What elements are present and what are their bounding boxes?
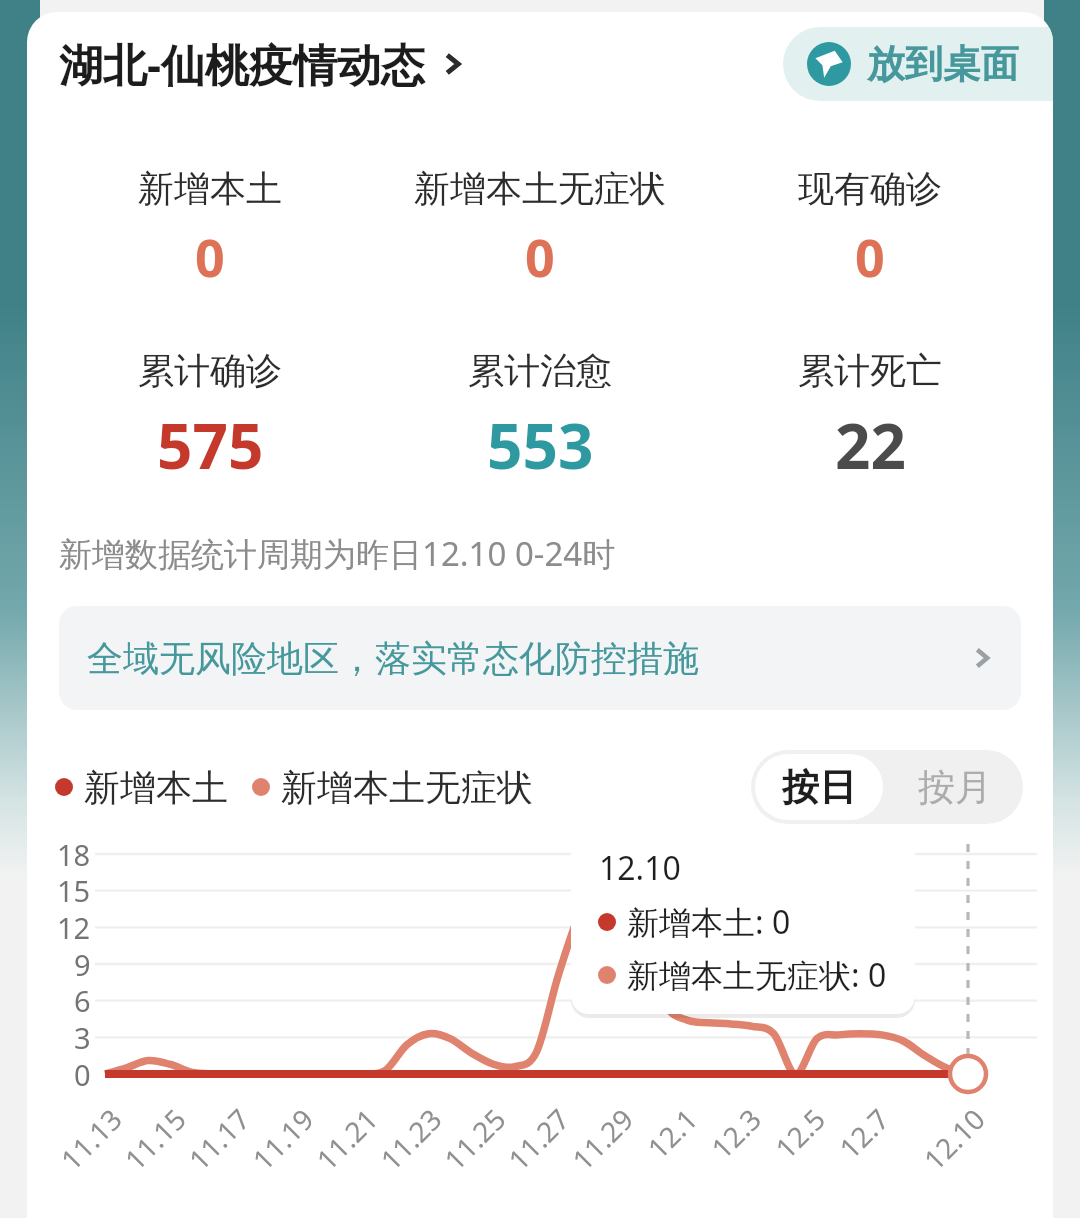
staticText: 22 (835, 403, 906, 487)
staticText: 0 (195, 221, 225, 292)
staticText: 按日 (782, 764, 856, 811)
staticText: 现有确诊 (798, 166, 942, 211)
staticText: 新增本土无症状 (414, 166, 666, 211)
button[interactable]: 湖北-仙桃疫情动态 (27, 12, 482, 116)
staticText: 累计死亡 (798, 348, 942, 393)
button[interactable]: Add to home screen (783, 27, 1053, 101)
button[interactable]: 全域无风险地区，落实常态化防控措施 (59, 606, 1021, 710)
staticText: 0 (525, 221, 555, 292)
staticText: 575 (157, 403, 264, 487)
button[interactable]: 按日 (755, 754, 883, 820)
staticText: 累计确诊 (138, 348, 282, 393)
staticText: 累计治愈 (468, 348, 612, 393)
staticText: 553 (487, 403, 594, 487)
staticText: 湖北-仙桃疫情动态 (59, 34, 426, 94)
staticText: 新增数据统计周期为昨日12.10 0-24时 (59, 531, 616, 576)
staticText: 放到桌面 (867, 40, 1019, 88)
staticText: 新增本土 (84, 765, 228, 810)
staticText: 新增本土 (138, 166, 282, 211)
button[interactable]: 按月 (887, 750, 1023, 824)
staticText: 新增本土无症状 (281, 765, 533, 810)
staticText: 全域无风险地区，落实常态化防控措施 (87, 636, 699, 681)
other: Add to home screen (807, 42, 851, 86)
staticText: 按月 (918, 764, 992, 811)
staticText: 0 (855, 221, 885, 292)
